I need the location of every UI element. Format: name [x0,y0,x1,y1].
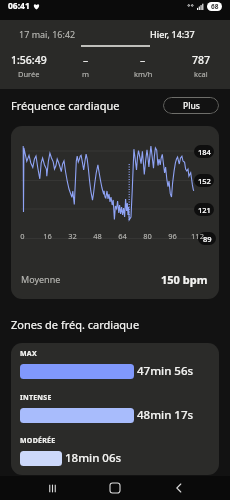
button[interactable]: 17 mai, 16:42 [0,23,115,45]
button[interactable]: Recents [40,476,64,500]
staticText: 184 [198,147,211,157]
button[interactable]: MODÉRÉE [20,430,219,472]
staticText: Fréquence cardiaque [11,98,120,113]
staticText: km/h [134,69,153,79]
staticText: MODÉRÉE [20,436,56,446]
staticText: MAX [20,349,37,359]
staticText: – [83,53,89,67]
staticText: 48min 17s [137,407,194,423]
staticText: 0 [20,231,25,241]
staticText: – [140,53,146,67]
staticText: kcal [194,69,208,79]
staticText: 89 [203,234,212,244]
staticText: 80 [143,231,152,241]
staticText: INTENSE [20,393,52,403]
staticText: 64 [118,231,127,241]
staticText: 112 [191,231,204,241]
button[interactable]: – [114,53,172,79]
staticText: 787 [192,53,211,67]
staticText: Hier, 14:37 [150,28,195,40]
button[interactable]: Home [103,476,127,500]
button[interactable]: 787 [172,53,230,79]
staticText: 18min 06s [65,450,122,466]
staticText: 152 [198,176,211,186]
staticText: Zones de fréq. cardiaque [11,317,140,332]
staticText: m [82,69,90,79]
staticText: 150 bpm [161,272,208,287]
staticText: 96 [168,231,177,241]
staticText: 68 [211,2,219,11]
button[interactable]: Back [167,476,191,500]
staticText: Moyenne [21,273,61,285]
staticText: 47min 56s [137,363,194,379]
staticText: Plus [183,100,200,112]
staticText: 32 [68,231,77,241]
staticText: 1:56:49 [11,53,47,67]
button[interactable]: Plus [163,97,219,114]
staticText: Durée [18,69,40,79]
staticText: 48 [93,231,102,241]
button[interactable]: Hier, 14:37 [115,23,230,45]
staticText: 121 [198,205,211,215]
staticText: 17 mai, 16:42 [19,28,76,40]
button[interactable]: INTENSE [20,387,219,429]
button[interactable]: 1:56:49 [0,53,57,79]
button[interactable]: – [57,53,114,79]
staticText: 16 [43,231,52,241]
staticText: 06:41 [8,0,30,12]
button[interactable]: MAX [20,343,219,385]
